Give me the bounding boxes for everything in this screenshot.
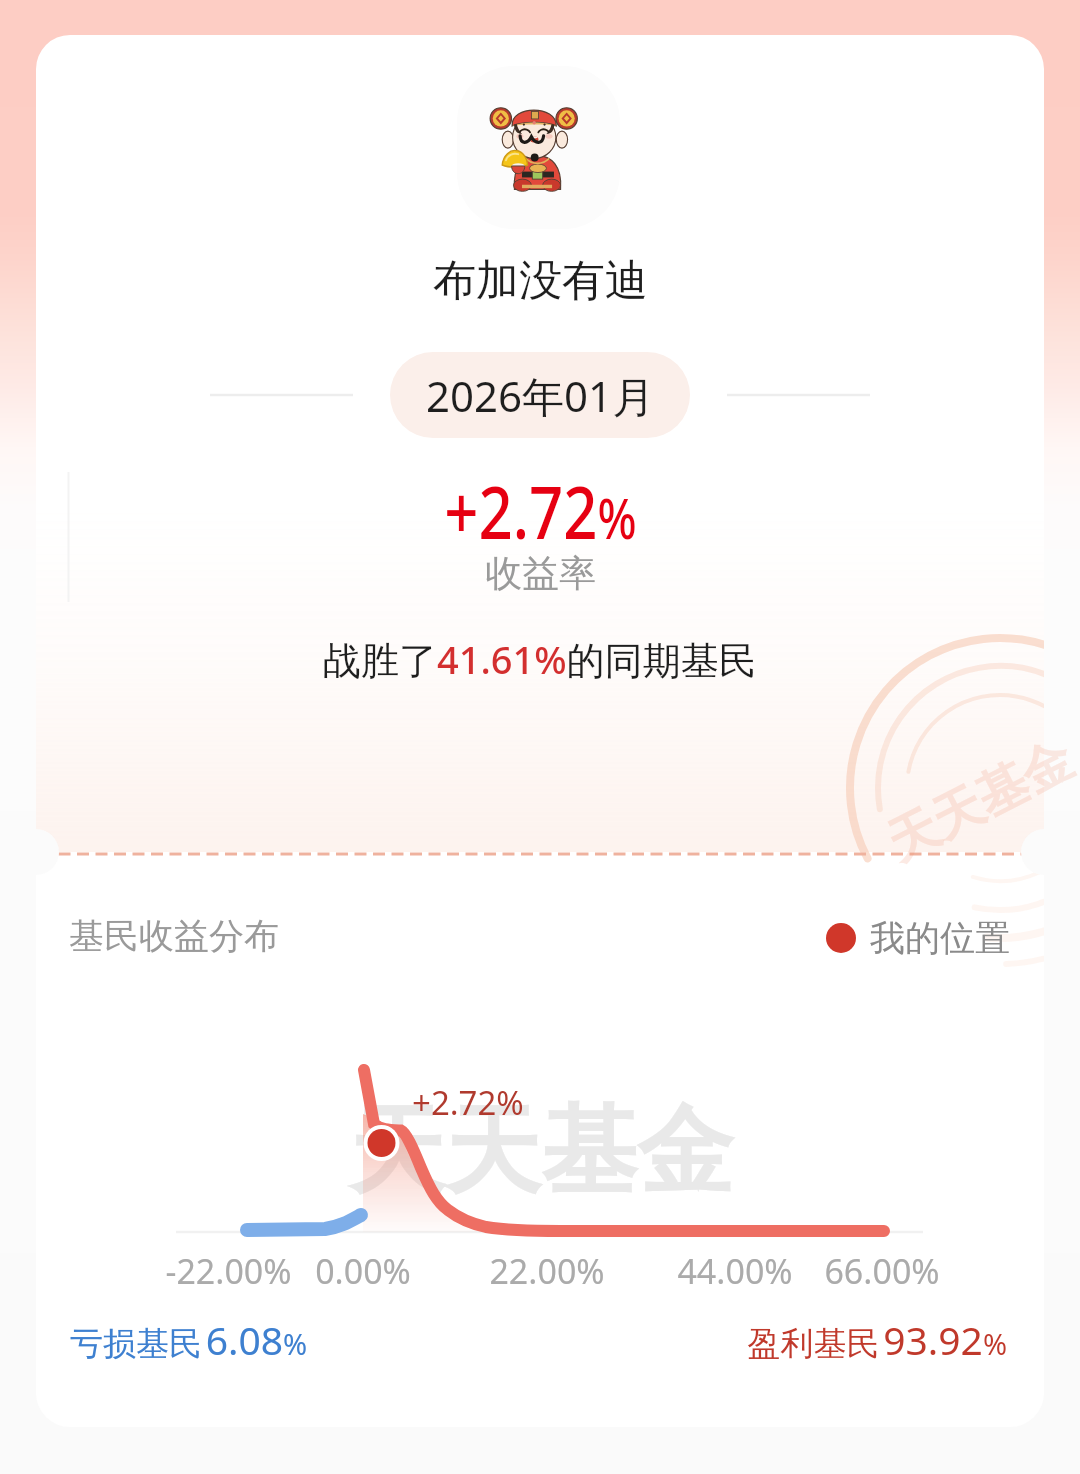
button[interactable]: 我的位置 xyxy=(821,916,1010,960)
staticText: 天天基金 xyxy=(349,1092,733,1213)
staticText: +2.72% xyxy=(444,461,637,560)
button[interactable]: 2026年01月 xyxy=(390,352,690,438)
staticText: 战胜了41.61%的同期基民 xyxy=(323,633,757,685)
staticText: -22.00% xyxy=(165,1248,292,1294)
staticText: 基民收益分布 xyxy=(69,914,279,958)
staticText: +2.72% xyxy=(412,1080,524,1125)
staticText: 亏损基民 6.08% xyxy=(70,1313,308,1366)
staticText: 44.00% xyxy=(677,1248,793,1294)
staticText: 22.00% xyxy=(489,1248,605,1294)
staticText: 收益率 xyxy=(485,550,596,597)
staticText: 天天基金 xyxy=(877,728,1080,875)
staticText: 0.00% xyxy=(315,1248,411,1294)
staticText: 我的位置 xyxy=(870,916,1010,960)
staticText: 66.00% xyxy=(824,1248,940,1294)
staticText: 布加没有迪 xyxy=(433,254,648,308)
staticText: 盈利基民 93.92% xyxy=(747,1313,1007,1366)
staticText: 2026年01月 xyxy=(426,367,655,424)
button[interactable]: Avatar xyxy=(457,66,620,229)
